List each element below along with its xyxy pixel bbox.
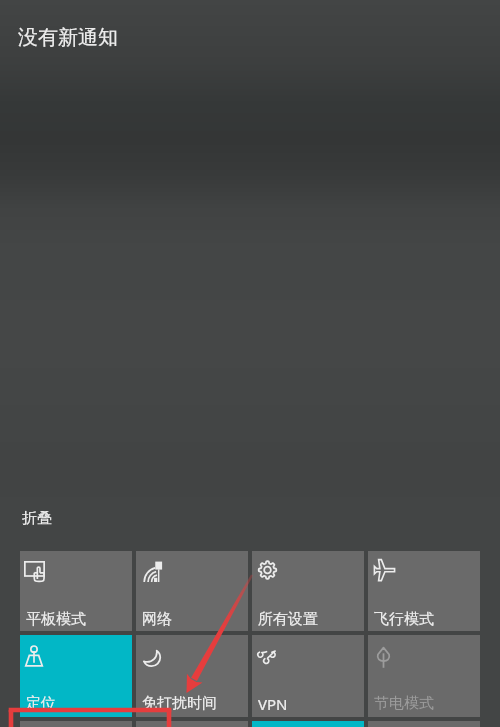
button[interactable]: 网络 [136,551,248,631]
staticText: 网络 [142,610,172,629]
staticText: 免打扰时间 [142,694,217,713]
staticText: 没有新通知 [18,25,118,50]
button[interactable]: 平板模式 [20,551,132,631]
button[interactable]: 节电模式 [368,635,480,717]
button[interactable]: 折叠 [22,509,52,528]
button[interactable]: 飞行模式 [368,551,480,631]
button[interactable]: VPN [252,635,364,717]
button[interactable]: 所有设置 [252,551,364,631]
button[interactable]: Quick action [136,721,248,727]
staticText: 飞行模式 [374,610,434,629]
button[interactable]: 定位 [20,635,132,717]
staticText: 平板模式 [26,610,86,629]
staticText: 定位 [26,694,56,713]
staticText: 所有设置 [258,610,318,629]
button[interactable]: 免打扰时间 [136,635,248,717]
staticText: VPN [258,694,288,714]
staticText: 节电模式 [374,694,434,713]
